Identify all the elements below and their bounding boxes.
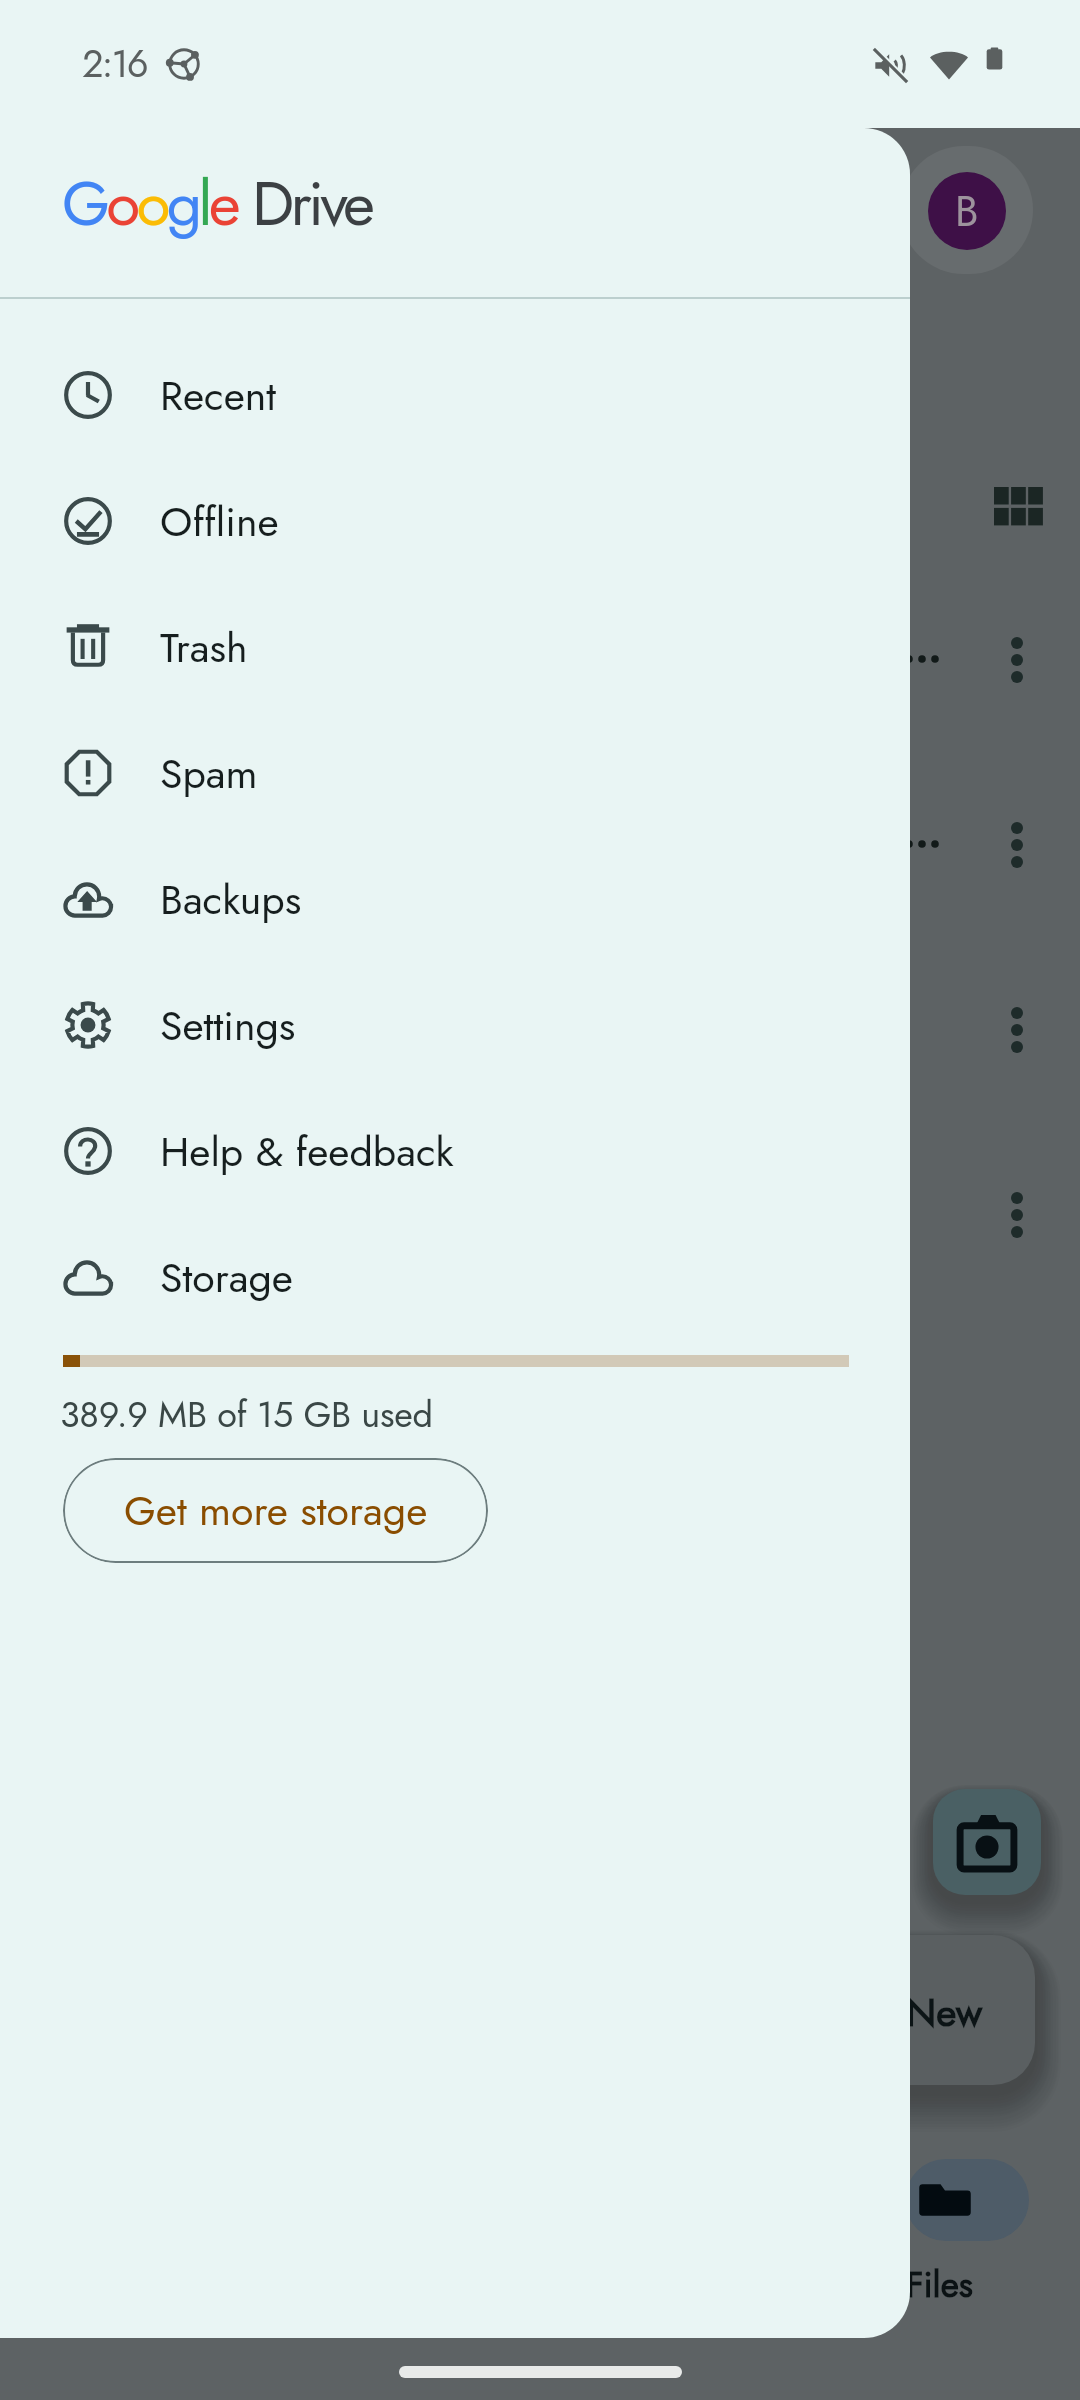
button[interactable]	[905, 2159, 1029, 2241]
button[interactable]: More options	[996, 1185, 1038, 1245]
button[interactable]: Backups	[0, 836, 910, 962]
button[interactable]: Trash	[0, 584, 910, 710]
button[interactable]: More options	[996, 815, 1038, 875]
button[interactable]: Help & feedback	[0, 1088, 910, 1214]
button[interactable]: Recent	[0, 332, 910, 458]
staticText: 389.9 MB of 15 GB used	[60, 1388, 433, 1440]
button[interactable]: Offline	[0, 458, 910, 584]
staticText: Offline	[160, 492, 279, 551]
staticText: B	[955, 181, 979, 242]
staticText: Get more storage	[124, 1481, 428, 1540]
button[interactable]: More options	[996, 1000, 1038, 1060]
staticText: Backups	[160, 870, 302, 929]
staticText: 2:16	[82, 36, 147, 91]
staticText: Recent	[160, 366, 277, 425]
button[interactable]: Spam	[0, 710, 910, 836]
staticText: Storage	[160, 1248, 293, 1307]
button[interactable]: Get more storage	[63, 1458, 488, 1563]
button[interactable]: Storage	[0, 1214, 910, 1340]
button[interactable]: Settings	[0, 962, 910, 1088]
staticText: Google Drive	[62, 159, 372, 249]
staticText: Trash	[160, 618, 248, 677]
button[interactable]	[855, 1935, 1035, 2085]
button[interactable]: More options	[996, 630, 1038, 690]
staticText: Settings	[160, 996, 296, 1055]
button[interactable]: Account	[928, 172, 1006, 250]
staticText: Help & feedback	[160, 1122, 454, 1181]
staticText: Spam	[160, 744, 258, 803]
button[interactable]: Scan	[933, 1789, 1041, 1895]
staticText: New	[906, 1984, 983, 2040]
button[interactable]: Grid view	[991, 484, 1043, 536]
staticText: Files	[906, 2260, 973, 2311]
